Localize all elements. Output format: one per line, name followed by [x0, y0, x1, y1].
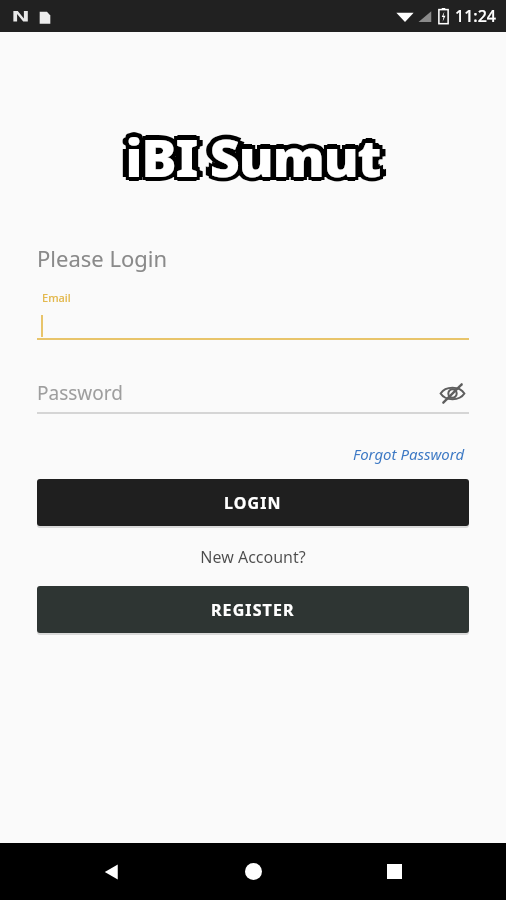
button[interactable]: Forgot Password	[349, 440, 469, 468]
button[interactable]: Back	[83, 843, 141, 900]
staticText: Email	[42, 290, 71, 305]
button[interactable]: Email	[37, 290, 469, 340]
button[interactable]: Show password	[435, 378, 469, 408]
staticText: 11:24	[455, 5, 496, 27]
button[interactable]: LOGIN	[37, 479, 469, 526]
button[interactable]: Password	[37, 378, 469, 414]
staticText: Password	[37, 380, 435, 406]
button[interactable]: Recent apps	[365, 843, 423, 900]
staticText: REGISTER	[211, 599, 295, 621]
staticText: New Account?	[200, 546, 306, 568]
staticText: Please Login	[37, 243, 168, 273]
staticText: Forgot Password	[353, 444, 465, 464]
button[interactable]: Home	[224, 843, 282, 900]
button[interactable]: New Account?	[197, 543, 309, 571]
button[interactable]: REGISTER	[37, 586, 469, 633]
staticText: LOGIN	[224, 492, 282, 514]
